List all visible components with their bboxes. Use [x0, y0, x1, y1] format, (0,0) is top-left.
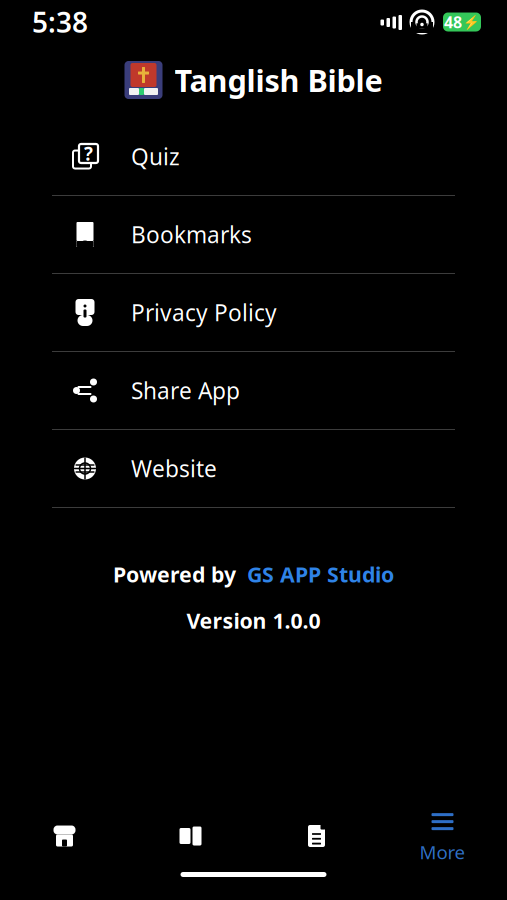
button[interactable]: Privacy Policy — [0, 274, 507, 351]
staticText: Bookmarks — [131, 219, 252, 249]
button[interactable]: Tab — [127, 800, 253, 872]
staticText: Quiz — [131, 141, 180, 171]
button[interactable]: Share App — [0, 352, 507, 429]
button[interactable]: Bookmarks — [0, 196, 507, 273]
staticText: Tanglish Bible — [174, 60, 382, 100]
button[interactable]: Tab — [253, 800, 379, 872]
staticText: 48 — [444, 11, 462, 33]
staticText: 5:38 — [32, 3, 88, 41]
staticText: GS APP Studio — [247, 560, 394, 588]
button[interactable]: Tab — [1, 800, 127, 872]
staticText: ? — [84, 141, 93, 166]
button[interactable]: GS APP Studio — [247, 560, 394, 588]
staticText: Powered by — [113, 560, 236, 588]
button[interactable]: Website — [0, 430, 507, 507]
staticText: ⚡ — [463, 14, 480, 30]
button[interactable]: ? — [0, 118, 507, 195]
staticText: Share App — [131, 375, 240, 405]
staticText: Version 1.0.0 — [186, 606, 320, 635]
staticText: More — [419, 840, 465, 864]
staticText: Website — [131, 453, 217, 483]
staticText: Privacy Policy — [131, 297, 277, 327]
button[interactable]: More — [379, 800, 505, 872]
